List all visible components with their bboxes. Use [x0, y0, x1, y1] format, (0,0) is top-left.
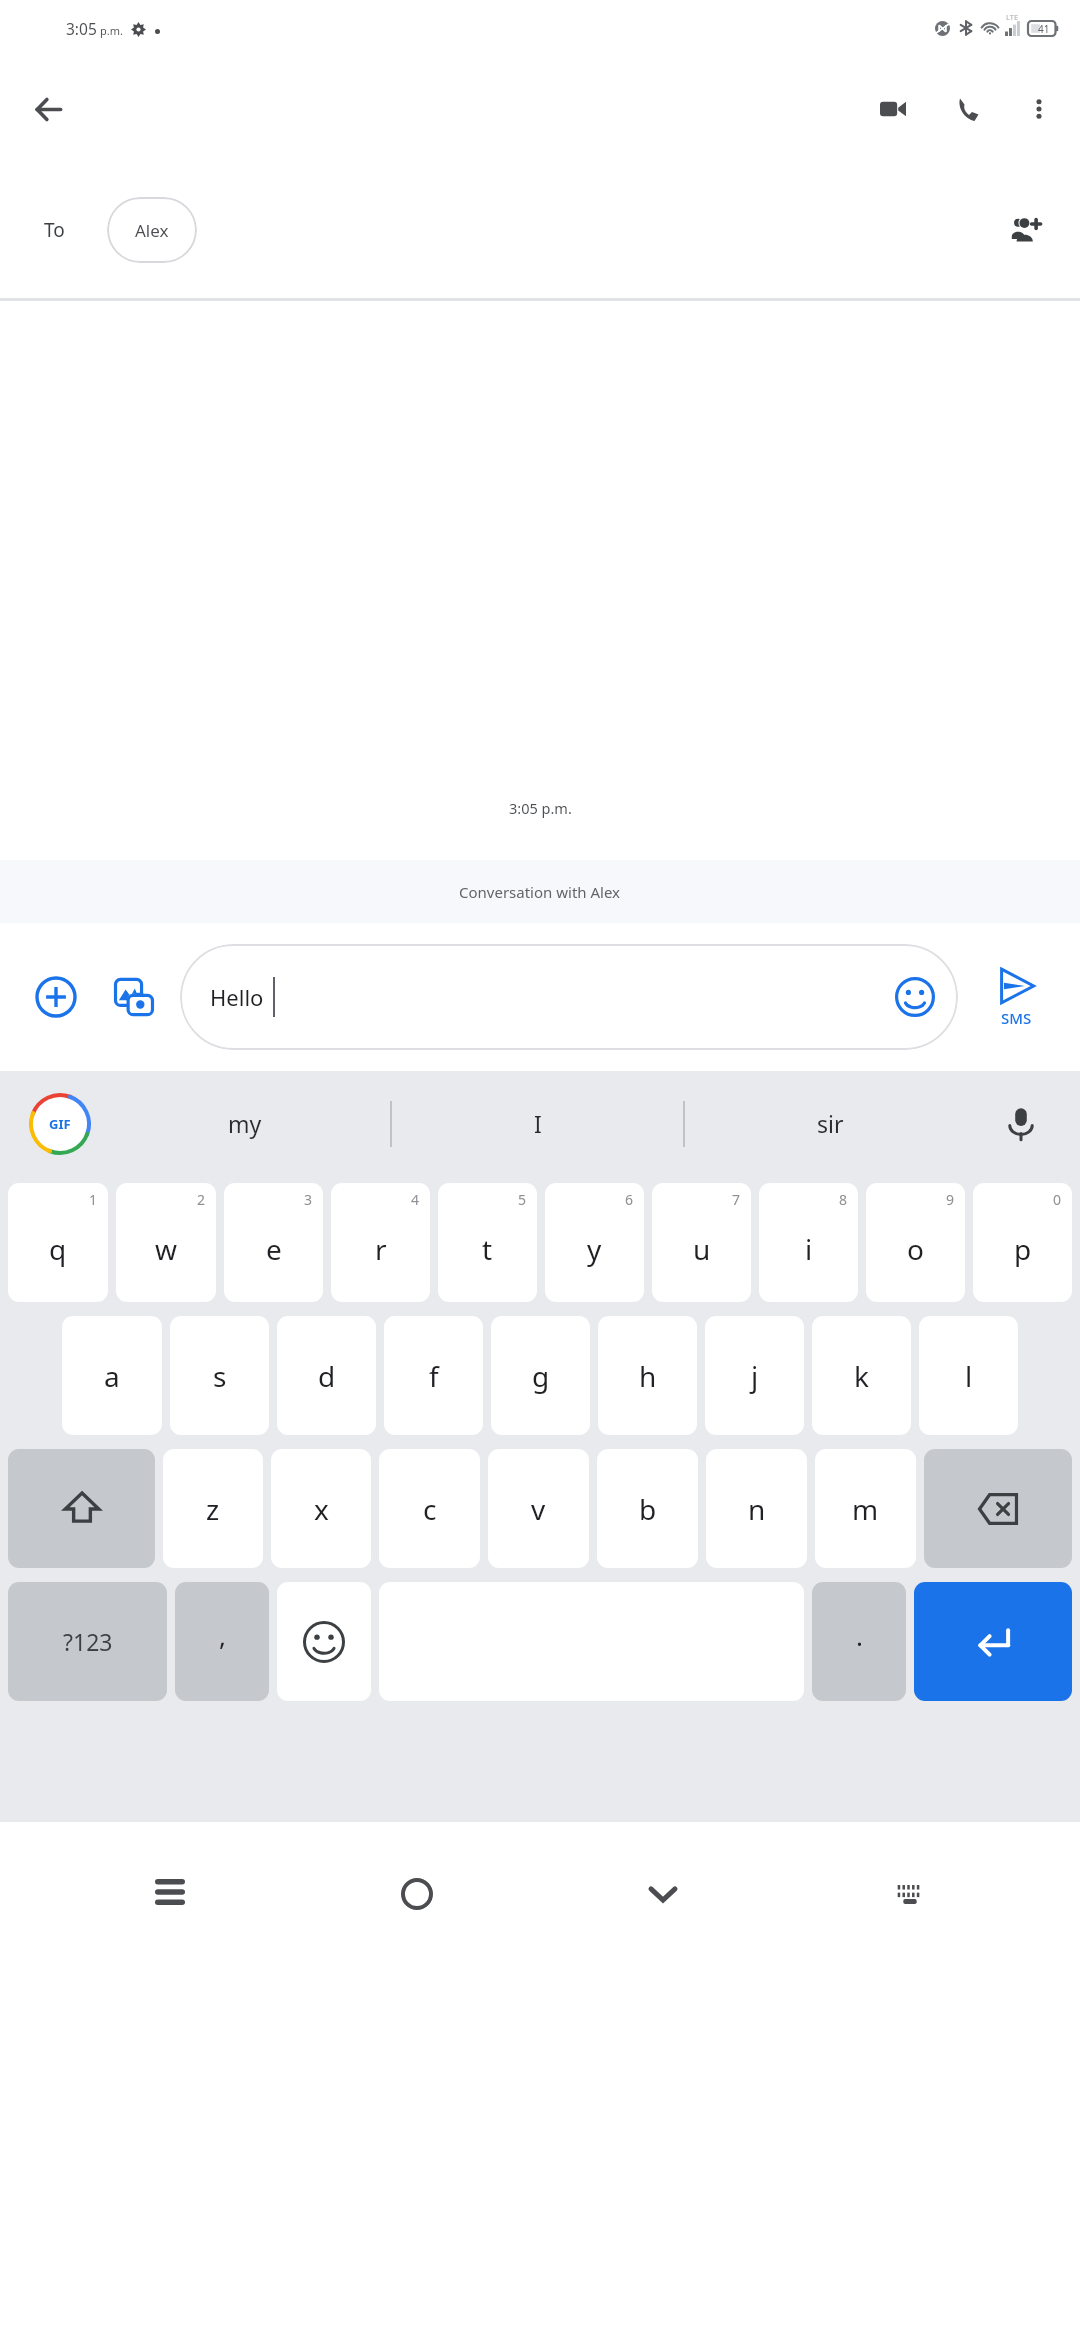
button[interactable]: 2 — [116, 1183, 216, 1302]
button[interactable]: Add people — [996, 201, 1054, 259]
button[interactable]: 3 — [224, 1183, 323, 1302]
button[interactable]: a — [62, 1316, 162, 1435]
staticText: 1 — [89, 1190, 98, 1209]
staticText: m — [852, 1490, 879, 1528]
staticText: z — [206, 1490, 220, 1528]
staticText: Conversation with Alex — [459, 882, 621, 902]
staticText: 9 — [946, 1190, 955, 1209]
button[interactable]: g — [491, 1316, 590, 1435]
staticText: 3:05 p.m. — [509, 798, 572, 818]
staticText: n — [748, 1490, 766, 1528]
staticText: d — [318, 1357, 336, 1395]
button[interactable]: Back — [20, 81, 76, 137]
staticText: s — [213, 1357, 227, 1395]
staticText: GIF — [49, 1115, 71, 1133]
button[interactable]: Call — [940, 80, 998, 138]
button[interactable]: 6 — [545, 1183, 644, 1302]
staticText: 7 — [732, 1190, 741, 1209]
staticText: u — [693, 1230, 711, 1268]
button[interactable]: s — [170, 1316, 269, 1435]
staticText: x — [314, 1490, 329, 1528]
button[interactable]: Switch keyboard — [870, 1854, 950, 1934]
button[interactable]: 0 — [973, 1183, 1072, 1302]
staticText: 3 — [304, 1190, 313, 1209]
button[interactable]: l — [919, 1316, 1018, 1435]
button[interactable]: j — [705, 1316, 804, 1435]
button[interactable]: c — [379, 1449, 480, 1568]
staticText: f — [429, 1357, 439, 1395]
button[interactable]: 5 — [438, 1183, 537, 1302]
staticText: SMS — [1001, 1008, 1032, 1028]
staticText: 6 — [625, 1190, 634, 1209]
button[interactable]: I — [392, 1071, 683, 1176]
button[interactable]: Send SMS — [958, 944, 1074, 1050]
button[interactable]: z — [163, 1449, 263, 1568]
staticText: o — [907, 1230, 924, 1268]
staticText: b — [639, 1490, 657, 1528]
staticText: i — [805, 1230, 813, 1268]
staticText: a — [104, 1357, 120, 1395]
staticText: g — [532, 1357, 550, 1395]
staticText: sir — [817, 1108, 844, 1139]
staticText: LTE — [1006, 12, 1019, 22]
button[interactable]: Enter — [914, 1582, 1072, 1701]
button[interactable]: k — [812, 1316, 911, 1435]
button[interactable]: Send photo — [102, 965, 166, 1029]
button[interactable]: More options — [1012, 82, 1066, 136]
staticText: 8 — [839, 1190, 848, 1209]
button[interactable]: Hide keyboard — [623, 1854, 703, 1934]
button[interactable]: f — [384, 1316, 483, 1435]
staticText: l — [965, 1357, 973, 1395]
button[interactable]: h — [598, 1316, 697, 1435]
staticText: q — [49, 1230, 67, 1268]
staticText: p — [1014, 1230, 1032, 1268]
button[interactable]: Hello — [180, 944, 958, 1050]
button[interactable]: 1 — [8, 1183, 108, 1302]
staticText: p.m. — [100, 23, 123, 38]
staticText: my — [228, 1108, 262, 1139]
button[interactable]: Home — [377, 1854, 457, 1934]
button[interactable]: x — [271, 1449, 371, 1568]
staticText: , — [219, 1618, 226, 1653]
button[interactable]: Voice input — [988, 1091, 1054, 1157]
button[interactable]: Video call — [864, 80, 922, 138]
button[interactable]: Emoji — [884, 966, 946, 1028]
button[interactable]: m — [815, 1449, 916, 1568]
staticText: 0 — [1053, 1190, 1062, 1209]
button[interactable]: Add attachment — [24, 965, 88, 1029]
button[interactable]: Backspace — [924, 1449, 1072, 1568]
staticText: y — [587, 1230, 602, 1268]
button[interactable]: b — [597, 1449, 698, 1568]
button[interactable]: Recents — [130, 1854, 210, 1934]
button[interactable]: sir — [685, 1071, 976, 1176]
button[interactable]: n — [706, 1449, 807, 1568]
staticText: 41 — [1038, 22, 1050, 36]
button[interactable]: 7 — [652, 1183, 751, 1302]
button[interactable]: Alex — [107, 197, 197, 263]
button[interactable]: d — [277, 1316, 376, 1435]
staticText: c — [423, 1490, 437, 1528]
button[interactable]: ?123 — [8, 1582, 167, 1701]
staticText: h — [639, 1357, 657, 1395]
staticText: To — [44, 217, 65, 243]
staticText: v — [531, 1490, 546, 1528]
staticText: I — [534, 1108, 542, 1139]
button[interactable]: 9 — [866, 1183, 965, 1302]
staticText: Hello — [210, 982, 264, 1012]
button[interactable]: my — [100, 1071, 390, 1176]
staticText: w — [155, 1230, 178, 1268]
staticText: Alex — [135, 219, 169, 242]
button[interactable]: Shift — [8, 1449, 155, 1568]
staticText: r — [375, 1230, 387, 1268]
staticText: t — [482, 1230, 493, 1268]
button[interactable]: . — [812, 1582, 906, 1701]
staticText: ?123 — [63, 1626, 113, 1657]
staticText: 5 — [518, 1190, 527, 1209]
button[interactable]: 8 — [759, 1183, 858, 1302]
button[interactable]: GIF — [26, 1090, 94, 1158]
button[interactable]: v — [488, 1449, 589, 1568]
button[interactable]: 4 — [331, 1183, 430, 1302]
button[interactable]: Emoji keyboard — [277, 1582, 371, 1701]
button[interactable]: , — [175, 1582, 269, 1701]
